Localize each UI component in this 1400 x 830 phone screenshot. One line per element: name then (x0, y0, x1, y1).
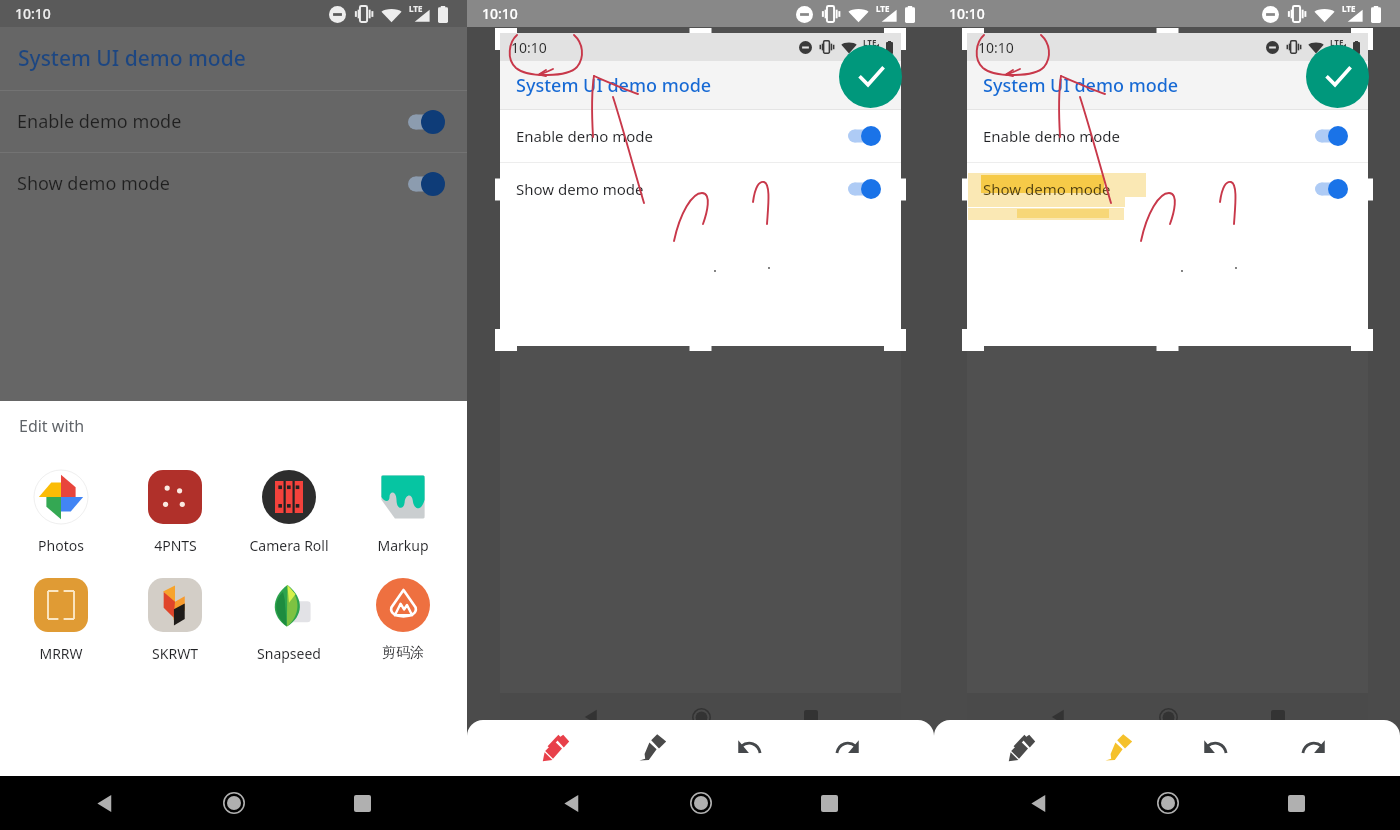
staticText: SKRWT (152, 644, 198, 663)
staticText: LTE (409, 3, 423, 14)
staticText: LTE (876, 3, 890, 14)
button[interactable]: Back (40, 776, 169, 830)
staticText: System UI demo mode (516, 73, 712, 98)
staticText: LTE (1342, 3, 1356, 14)
button[interactable]: Done (839, 45, 902, 108)
button[interactable]: Home (636, 776, 765, 830)
button[interactable]: Back (974, 776, 1103, 830)
staticText: Camera Roll (249, 536, 329, 555)
button[interactable]: Enable demo mode (967, 110, 1368, 162)
button[interactable]: MRRW (4, 577, 118, 663)
staticText: 10:10 (15, 4, 51, 23)
button[interactable]: Recents (1232, 776, 1361, 830)
staticText: System UI demo mode (983, 73, 1179, 98)
button[interactable]: 剪码涂 (346, 577, 460, 662)
button[interactable]: Enable demo mode (0, 91, 467, 152)
staticText: LTE (863, 37, 877, 48)
staticText: Show demo mode (17, 171, 170, 196)
button[interactable]: Show demo mode (967, 163, 1368, 215)
button[interactable]: Camera Roll (232, 469, 346, 555)
button[interactable]: System UI demo mode (0, 27, 467, 90)
button[interactable]: Done (1306, 45, 1369, 108)
staticText: Show demo mode (516, 179, 644, 199)
button[interactable]: Enable demo mode (500, 110, 901, 162)
button[interactable]: Snapseed (232, 577, 346, 663)
staticText: Enable demo mode (516, 126, 653, 146)
button[interactable]: Home (1103, 776, 1232, 830)
staticText: 10:10 (978, 38, 1014, 57)
staticText: System UI demo mode (18, 44, 246, 73)
button[interactable]: Photos (4, 469, 118, 555)
staticText: Photos (38, 536, 84, 555)
button[interactable]: Highlighter (1070, 720, 1167, 776)
staticText: 剪码涂 (382, 644, 424, 662)
staticText: Edit with (19, 415, 85, 437)
staticText: 10:10 (511, 38, 547, 57)
staticText: Enable demo mode (17, 109, 182, 134)
staticText: 4PNTS (154, 536, 197, 555)
staticText: Markup (377, 536, 429, 555)
button[interactable]: Redo (798, 720, 895, 776)
button[interactable]: Home (169, 776, 298, 830)
button[interactable]: Undo (1167, 720, 1264, 776)
button[interactable]: Highlighter (604, 720, 701, 776)
button[interactable]: Pen (973, 720, 1070, 776)
staticText: MRRW (39, 644, 83, 663)
staticText: Snapseed (257, 644, 321, 663)
button[interactable]: Show demo mode (0, 153, 467, 214)
button[interactable]: Pen (507, 720, 604, 776)
button[interactable]: Redo (1264, 720, 1361, 776)
staticText: 10:10 (949, 4, 985, 23)
button[interactable]: SKRWT (118, 577, 232, 663)
button[interactable]: Markup (346, 469, 460, 555)
button[interactable]: Show demo mode (500, 163, 901, 215)
button[interactable]: Recents (298, 776, 427, 830)
button[interactable]: 4PNTS (118, 469, 232, 555)
staticText: Enable demo mode (983, 126, 1120, 146)
staticText: 10:10 (482, 4, 518, 23)
button[interactable]: Undo (701, 720, 798, 776)
staticText: LTE (1330, 37, 1344, 48)
button[interactable]: Back (507, 776, 636, 830)
button[interactable]: Recents (765, 776, 894, 830)
staticText: Show demo mode (983, 179, 1111, 199)
